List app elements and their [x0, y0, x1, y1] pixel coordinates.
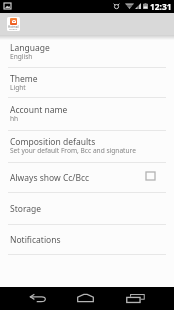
button[interactable]: Always show Cc/Bcc — [0, 163, 174, 192]
staticText: Language — [10, 43, 50, 53]
staticText: Composition defaults — [10, 137, 96, 147]
staticText: Set your default From, Bcc and signature — [10, 147, 136, 155]
button[interactable]: Back — [14, 287, 59, 310]
staticText: Theme — [10, 74, 38, 84]
button[interactable]: Notifications — [0, 225, 174, 254]
button[interactable]: Composition defaults — [0, 131, 174, 162]
button[interactable]: Storage — [0, 193, 174, 224]
staticText: Hotmail — [8, 25, 19, 29]
button[interactable]: Language — [0, 36, 174, 67]
staticText: 12:31 — [150, 1, 172, 12]
button[interactable]: Home — [64, 287, 109, 310]
button[interactable]: Recent apps — [114, 287, 159, 310]
staticText: Light — [10, 84, 26, 92]
staticText: Always show Cc/Bcc — [10, 173, 90, 183]
button[interactable]: Hotmail app — [7, 17, 20, 31]
staticText: MOBILE — [9, 28, 18, 31]
staticText: Account name — [10, 105, 68, 115]
staticText: hh — [10, 115, 19, 123]
staticText: English — [10, 53, 33, 61]
staticText: Storage — [10, 204, 42, 214]
button[interactable]: Theme — [0, 68, 174, 97]
staticText: Notifications — [10, 235, 61, 245]
button[interactable]: Account name — [0, 98, 174, 130]
